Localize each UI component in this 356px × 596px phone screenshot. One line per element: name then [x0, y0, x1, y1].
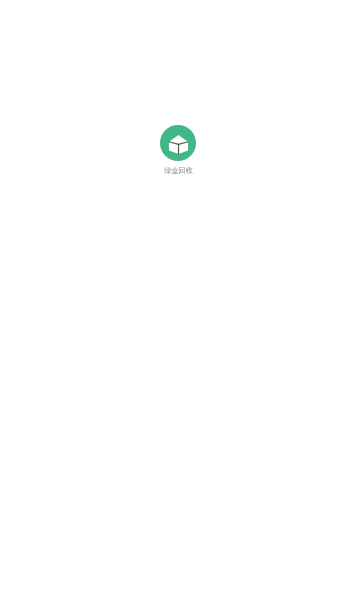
other: 绿盒回收	[160, 125, 196, 161]
staticText: 绿盒回收	[164, 166, 193, 175]
